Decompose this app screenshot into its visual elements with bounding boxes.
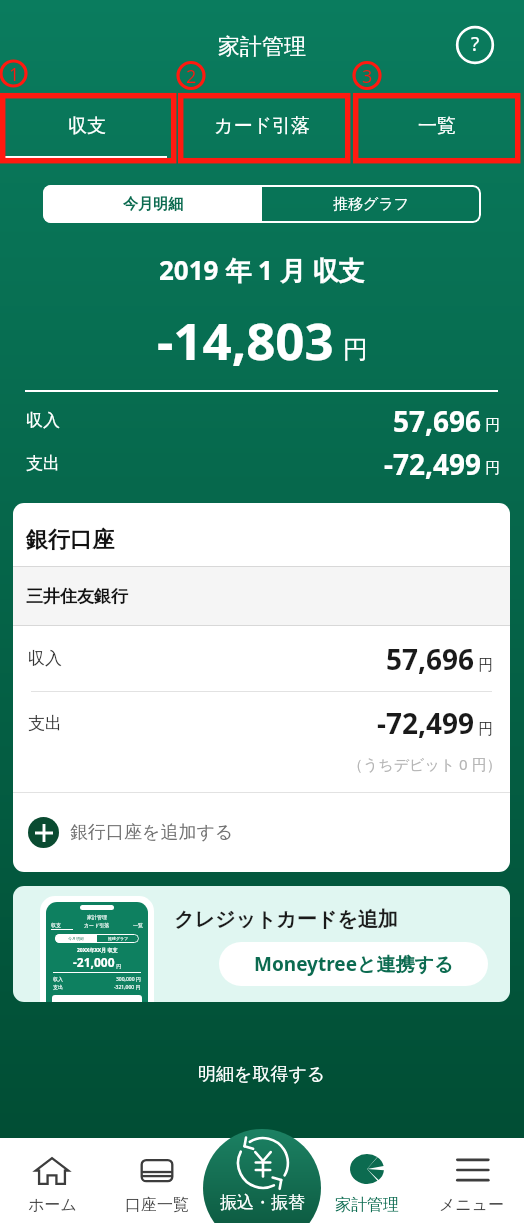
staticText: 家計管理 [335,1195,399,1215]
staticText: 支出 [26,453,60,474]
staticText: 円 [478,720,493,739]
staticText: 収入 [28,648,62,669]
staticText: 一覧 [133,922,143,928]
staticText: Moneytreeと連携する [254,951,454,977]
staticText: 円 [485,459,500,478]
button[interactable]: 一覧 [349,95,524,161]
button[interactable]: 収支 [0,95,174,161]
button[interactable]: 明細を取得する [0,1052,524,1096]
staticText: 銀行口座 [26,526,114,554]
staticText: 銀行口座を追加する [70,821,234,844]
staticText: 円 [343,334,368,365]
staticText: 57,696 [386,640,475,678]
staticText: 20XX年XX月 収支 [77,947,118,954]
staticText: カード引落 [84,922,110,928]
staticText: 収入 [53,976,63,982]
button[interactable]: 家計管理 [314,1138,419,1223]
staticText: 今月明細 [123,195,183,214]
button[interactable]: Moneytreeと連携する [219,942,488,986]
button[interactable]: 口座一覧 [104,1138,209,1223]
button[interactable]: 推移グラフ [262,185,481,223]
staticText: 家計管理 [87,914,107,920]
staticText: 1 [9,62,20,86]
staticText: 3 [362,64,373,88]
button[interactable]: 家計管理 [13,886,510,1002]
staticText: -14,803 [157,305,334,374]
button[interactable]: ホーム [0,1138,104,1223]
staticText: 57,696 [393,402,482,438]
staticText: 収入 [26,410,60,431]
staticText: 2019 年 1 月 収支 [159,252,365,288]
staticText: 推移グラフ [333,195,410,214]
staticText: 一覧 [418,114,456,138]
staticText: 今月明細 [68,936,84,941]
staticText: -21,000 [73,954,115,970]
staticText: 明細を取得する [198,1063,326,1086]
staticText: 円 [485,416,500,435]
staticText: -72,499 [384,445,482,481]
staticText: （うちデビット 0 円） [348,754,502,774]
button[interactable]: Help [451,21,499,69]
staticText: ホーム [28,1195,77,1215]
staticText: 口座一覧 [125,1195,189,1215]
staticText: -72,499 [377,704,475,742]
staticText: 推移グラフ [108,936,129,941]
staticText: 2 [186,64,197,88]
staticText: 支出 [28,713,62,734]
staticText: -321,000 円 [114,984,141,991]
staticText: 家計管理 [218,33,306,61]
staticText: メニュー [439,1195,505,1215]
staticText: クレジットカードを追加 [174,907,398,932]
button[interactable]: 振込・振替 [203,1129,321,1223]
button[interactable]: カード引落 [174,95,349,161]
staticText: 円 [115,963,122,970]
staticText: 振込・振替 [220,1192,305,1213]
button[interactable]: 今月明細 [43,185,262,223]
staticText: 収支 [51,922,61,928]
button[interactable]: メニュー [419,1138,524,1223]
button[interactable]: 銀行口座を追加する [13,793,510,872]
staticText: 円 [478,656,493,675]
staticText: カード引落 [214,114,310,138]
staticText: 支出 [53,984,63,990]
staticText: 三井住友銀行 [26,586,128,607]
staticText: ? [471,31,480,57]
staticText: 300,000 円 [116,976,141,983]
staticText: 収支 [68,114,106,138]
